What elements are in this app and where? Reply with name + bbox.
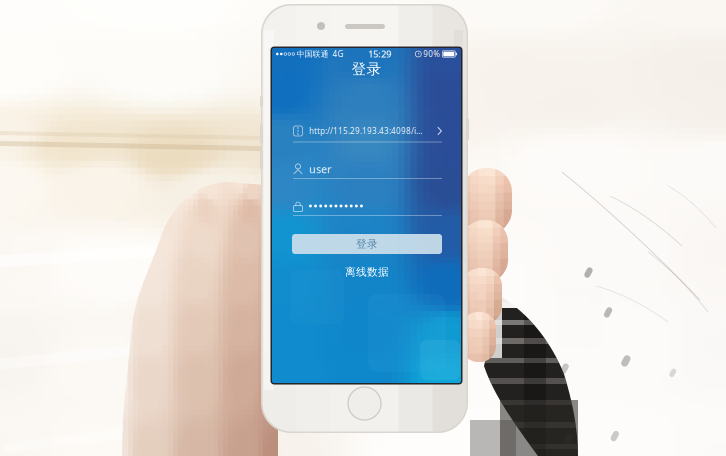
staticText: 4G <box>329 49 344 59</box>
button[interactable]: http://115.29.193.43:4098/i5... <box>293 121 442 141</box>
staticText: 中国联通 <box>295 49 329 59</box>
button[interactable]: 登录 <box>292 234 442 254</box>
staticText: http://115.29.193.43:4098/i5... <box>309 126 423 136</box>
staticText: 15:29 <box>368 48 391 60</box>
button[interactable] <box>293 196 442 216</box>
staticText: 登录 <box>351 60 381 78</box>
staticText: 90% <box>421 49 442 59</box>
button[interactable]: user <box>293 159 442 179</box>
staticText: 登录 <box>356 237 378 250</box>
button[interactable]: 离线数据 <box>332 265 402 279</box>
staticText: 离线数据 <box>345 265 389 278</box>
staticText: user <box>309 162 331 176</box>
